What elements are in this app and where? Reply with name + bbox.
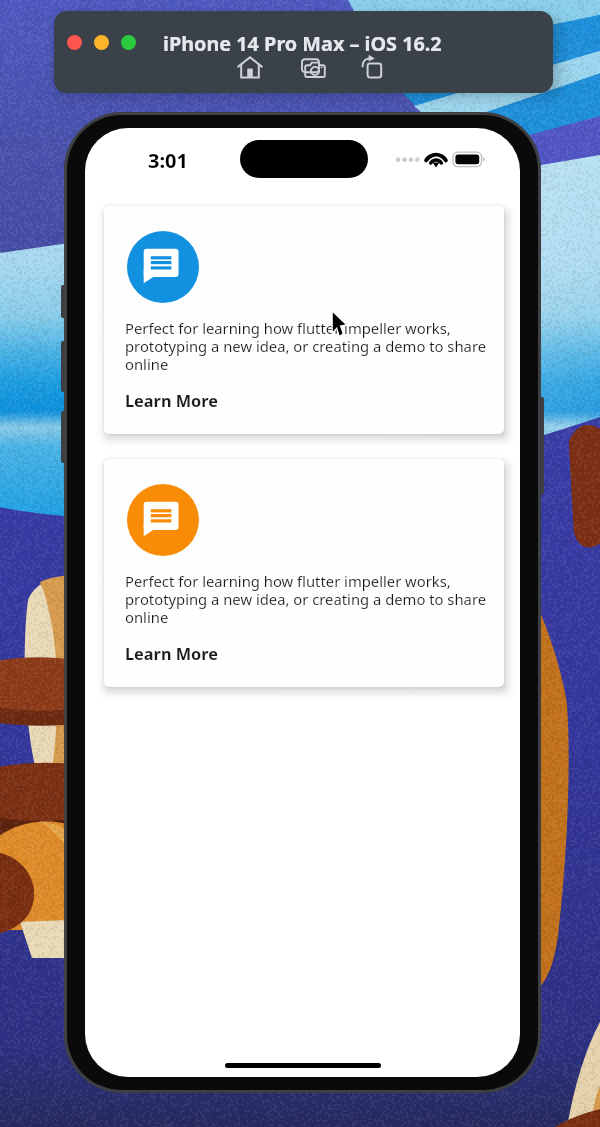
button[interactable]: Rotate — [358, 52, 388, 82]
button[interactable]: Screenshot — [298, 53, 328, 83]
button[interactable]: Perfect for learning how flutter impelle… — [104, 459, 504, 687]
staticText: Perfect for learning how flutter impelle… — [125, 318, 487, 375]
button[interactable]: Home — [235, 52, 265, 82]
button[interactable]: Perfect for learning how flutter impelle… — [104, 206, 504, 434]
button[interactable] — [67, 35, 82, 50]
staticText: iPhone 14 Pro Max – iOS 16.2 — [163, 30, 442, 57]
button[interactable]: Learn More — [125, 390, 218, 412]
staticText: 3:01 — [148, 147, 188, 174]
staticText: Perfect for learning how flutter impelle… — [125, 571, 487, 628]
button[interactable] — [94, 35, 109, 50]
button[interactable]: Learn More — [125, 643, 218, 665]
button[interactable] — [121, 35, 136, 50]
